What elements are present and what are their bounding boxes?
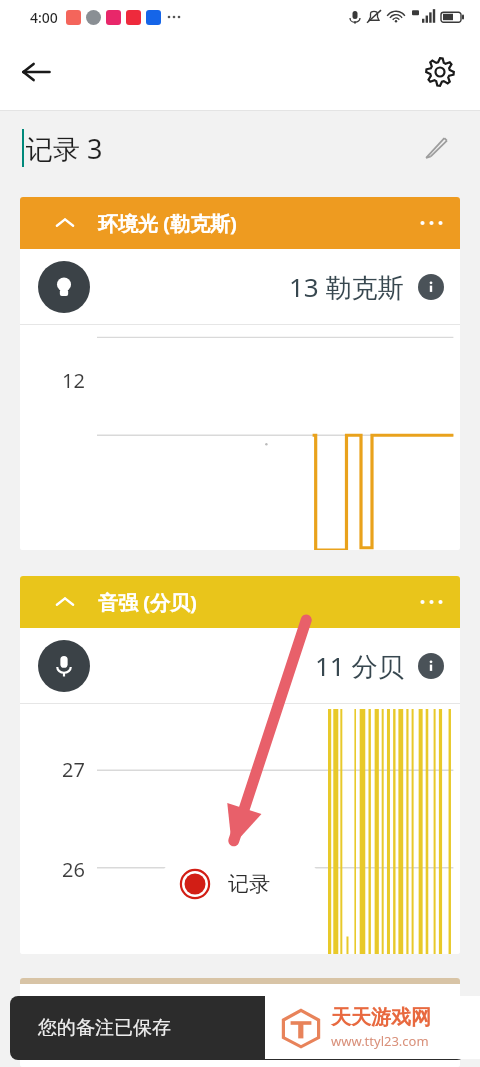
button[interactable] (38, 261, 90, 313)
button[interactable]: 您的备注已保存 (10, 996, 465, 1060)
staticText: 环境光 (勒克斯) (98, 210, 237, 237)
button[interactable]: 音强 (分贝) (20, 576, 460, 628)
button[interactable]: Edit title (414, 126, 458, 170)
button[interactable]: More options (410, 201, 454, 245)
staticText: www.ttyl23.com (331, 1032, 429, 1050)
button[interactable]: Info (418, 653, 444, 679)
button[interactable]: Back (10, 46, 62, 98)
staticText: 13 勒克斯 (289, 269, 404, 305)
staticText: 记录 3 (26, 130, 103, 167)
staticText: 12 (62, 367, 85, 394)
staticText: 4:00 (30, 8, 58, 27)
button[interactable]: 环境光 (勒克斯) (20, 197, 460, 249)
button[interactable]: Settings (414, 46, 466, 98)
button[interactable]: Info (418, 274, 444, 300)
button[interactable]: More options (410, 580, 454, 624)
staticText: 天天游戏网 (331, 1005, 431, 1030)
staticText: 27 (62, 756, 85, 783)
button[interactable] (38, 640, 90, 692)
staticText: 您的备注已保存 (38, 1016, 171, 1040)
staticText: 记录 (228, 871, 270, 897)
button[interactable]: 记录 (160, 855, 320, 913)
staticText: 音强 (分贝) (98, 589, 197, 616)
staticText: 11 分贝 (315, 648, 404, 684)
staticText: 26 (62, 856, 85, 883)
